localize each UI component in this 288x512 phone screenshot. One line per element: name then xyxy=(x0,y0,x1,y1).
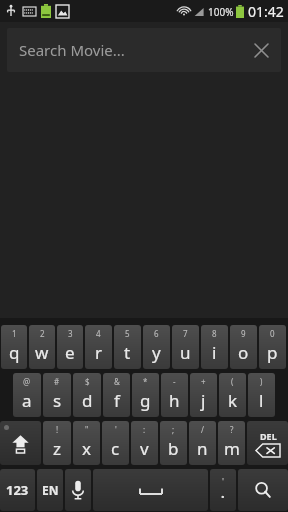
staticText: ( xyxy=(231,376,234,387)
staticText: t xyxy=(124,341,131,364)
staticText: 4 xyxy=(96,328,101,339)
staticText: w xyxy=(35,341,49,364)
button[interactable]: & xyxy=(103,373,130,417)
staticText: + xyxy=(201,376,206,387)
staticText: " xyxy=(85,424,89,435)
staticText: 100% xyxy=(208,5,234,19)
staticText: 8 xyxy=(212,328,217,339)
staticText: Search Movie... xyxy=(19,40,125,60)
staticText: ? xyxy=(230,424,234,435)
button[interactable]: Delete xyxy=(247,421,288,465)
staticText: q xyxy=(9,341,20,364)
staticText: ! xyxy=(56,424,59,435)
staticText: a xyxy=(22,389,32,412)
staticText: z xyxy=(53,437,61,460)
staticText: 2 xyxy=(40,328,45,339)
staticText: # xyxy=(54,376,60,387)
staticText: h xyxy=(169,389,180,412)
staticText: ' xyxy=(222,475,225,487)
staticText: v xyxy=(140,437,149,460)
staticText: k xyxy=(228,389,238,412)
staticText: y xyxy=(152,341,161,364)
staticText: 5 xyxy=(125,328,130,339)
button[interactable]: " xyxy=(73,421,100,465)
staticText: 0 xyxy=(270,328,275,339)
staticText: 3 xyxy=(68,328,73,339)
button[interactable]: Shift xyxy=(0,421,41,465)
staticText: EN xyxy=(42,482,59,498)
staticText: r xyxy=(95,341,103,364)
button[interactable]: EN xyxy=(37,469,63,511)
button[interactable]: Voice input xyxy=(65,469,91,511)
button[interactable]: ( xyxy=(219,373,246,417)
button[interactable]: 0 xyxy=(259,325,286,369)
button[interactable]: Search xyxy=(238,469,288,511)
staticText: ' xyxy=(115,424,117,435)
staticText: 9 xyxy=(241,328,246,339)
button[interactable]: ' xyxy=(102,421,129,465)
staticText: j xyxy=(201,389,206,412)
button[interactable]: Clear search xyxy=(241,30,281,70)
staticText: * xyxy=(143,376,148,387)
button[interactable]: $ xyxy=(73,373,101,417)
button[interactable]: 2 xyxy=(29,325,55,369)
staticText: i xyxy=(212,341,217,364)
staticText: s xyxy=(53,389,62,412)
staticText: ) xyxy=(260,376,263,387)
button[interactable]: 9 xyxy=(230,325,257,369)
staticText: : xyxy=(143,424,146,435)
staticText: o xyxy=(238,341,249,364)
staticText: . xyxy=(221,484,225,502)
staticText: b xyxy=(168,437,179,460)
staticText: 01:42 xyxy=(248,2,284,21)
button[interactable]: @ xyxy=(13,373,41,417)
button[interactable]: ! xyxy=(43,421,71,465)
staticText: - xyxy=(173,376,176,387)
button[interactable]: Search Movie... xyxy=(7,28,281,72)
staticText: f xyxy=(114,389,120,412)
staticText: c xyxy=(111,437,120,460)
button[interactable]: 123 xyxy=(0,469,35,511)
staticText: 6 xyxy=(154,328,159,339)
staticText: m xyxy=(224,437,240,460)
button[interactable]: / xyxy=(189,421,216,465)
button[interactable]: 8 xyxy=(201,325,228,369)
button[interactable]: 5 xyxy=(114,325,141,369)
button[interactable]: Period xyxy=(210,469,236,511)
button[interactable]: 4 xyxy=(85,325,112,369)
button[interactable]: * xyxy=(132,373,159,417)
button[interactable]: 6 xyxy=(143,325,170,369)
staticText: DEL xyxy=(260,430,277,442)
staticText: e xyxy=(65,341,75,364)
staticText: $ xyxy=(85,376,90,387)
staticText: l xyxy=(259,389,264,412)
button[interactable]: # xyxy=(43,373,71,417)
button[interactable]: Space xyxy=(93,469,208,511)
button[interactable]: - xyxy=(161,373,188,417)
staticText: u xyxy=(180,341,191,364)
staticText: 7 xyxy=(183,328,188,339)
staticText: / xyxy=(201,424,204,435)
staticText: n xyxy=(197,437,208,460)
button[interactable]: 1 xyxy=(1,325,27,369)
staticText: 1 xyxy=(12,328,17,339)
staticText: g xyxy=(140,389,151,412)
button[interactable]: : xyxy=(131,421,158,465)
button[interactable]: ) xyxy=(248,373,275,417)
staticText: p xyxy=(267,341,278,364)
staticText: 123 xyxy=(6,481,29,499)
staticText: ; xyxy=(172,424,175,435)
button[interactable]: ? xyxy=(218,421,245,465)
staticText: & xyxy=(114,376,120,387)
button[interactable]: 3 xyxy=(57,325,83,369)
button[interactable]: ; xyxy=(160,421,187,465)
staticText: d xyxy=(82,389,93,412)
staticText: x xyxy=(82,437,91,460)
button[interactable]: 7 xyxy=(172,325,199,369)
button[interactable]: + xyxy=(190,373,217,417)
staticText: @ xyxy=(23,376,31,387)
